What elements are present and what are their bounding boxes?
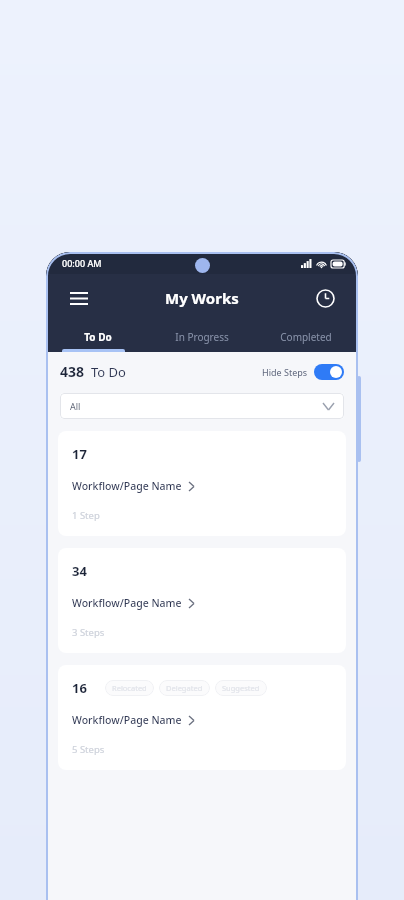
button[interactable]: Delegated <box>159 680 210 696</box>
staticText: 00:00 AM <box>62 257 102 269</box>
button[interactable]: Suggested <box>215 680 267 696</box>
staticText: To Do <box>84 330 112 344</box>
staticText: Completed <box>280 330 332 344</box>
button[interactable]: Workflow/Page Name <box>72 713 194 727</box>
staticText: Hide Steps <box>262 366 308 378</box>
button[interactable]: Relocated <box>105 680 154 696</box>
staticText: Workflow/Page Name <box>72 596 182 610</box>
button[interactable]: Hide Steps <box>262 364 344 380</box>
button[interactable]: Workflow/Page Name <box>72 479 194 493</box>
staticText: 3 Steps <box>72 626 105 639</box>
staticText: Delegated <box>166 683 203 693</box>
button[interactable]: 16 <box>58 665 346 770</box>
staticText: In Progress <box>175 330 229 344</box>
staticText: 17 <box>72 445 87 463</box>
staticText: 34 <box>72 562 87 580</box>
button[interactable]: All <box>60 393 344 419</box>
button[interactable]: In Progress <box>150 322 254 352</box>
staticText: Relocated <box>112 683 147 693</box>
staticText: 438 <box>60 362 85 381</box>
staticText: My Works <box>165 288 239 308</box>
button[interactable]: 17 <box>58 431 346 536</box>
staticText: All <box>70 400 81 412</box>
button[interactable]: 34 <box>58 548 346 653</box>
staticText: To Do <box>91 363 126 381</box>
button[interactable]: Completed <box>254 322 358 352</box>
staticText: 16 <box>72 679 87 697</box>
button[interactable]: Workflow/Page Name <box>72 596 194 610</box>
button[interactable]: To Do <box>46 322 150 352</box>
staticText: Suggested <box>222 683 260 693</box>
staticText: Workflow/Page Name <box>72 713 182 727</box>
staticText: Workflow/Page Name <box>72 479 182 493</box>
button[interactable]: Menu <box>64 283 94 313</box>
staticText: 5 Steps <box>72 743 105 756</box>
staticText: 1 Step <box>72 509 100 522</box>
button[interactable]: History <box>310 283 340 313</box>
